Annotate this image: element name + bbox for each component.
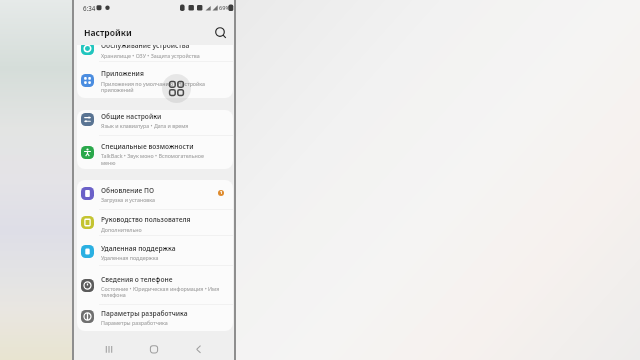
staticText: 6:34 <box>83 4 96 12</box>
button[interactable] <box>77 106 233 134</box>
button[interactable] <box>77 66 233 94</box>
staticText: 1 <box>220 190 223 196</box>
staticText: Удаленная поддержка <box>101 254 159 261</box>
staticText: Обновление ПО <box>101 186 155 195</box>
staticText: меню <box>101 159 116 166</box>
staticText: Руководство пользователя <box>101 215 191 224</box>
staticText: Состояние • Юридическая информация • Имя <box>101 285 220 292</box>
button[interactable] <box>77 179 233 207</box>
button[interactable] <box>77 302 233 330</box>
staticText: Настройки <box>84 27 132 39</box>
staticText: Параметры разработчика <box>101 319 168 326</box>
staticText: телефона <box>101 291 126 298</box>
staticText: Приложения <box>101 69 144 78</box>
staticText: Сведения о телефоне <box>101 275 173 284</box>
button[interactable]: Back <box>186 337 210 360</box>
staticText: приложений <box>101 86 134 93</box>
staticText: Дополнительно <box>101 226 142 233</box>
staticText: Обслуживание устройства <box>101 45 190 50</box>
button[interactable]: Home <box>142 337 166 360</box>
staticText: Общие настройки <box>101 112 162 121</box>
staticText: Язык и клавиатура • Дата и время <box>101 122 189 129</box>
staticText: 69% <box>219 4 231 12</box>
button[interactable] <box>77 209 233 237</box>
staticText: Приложения по умолчанию • Настройка <box>101 80 205 87</box>
staticText: Хранилище • ОЗУ • Защита устройства <box>101 52 200 59</box>
button[interactable] <box>77 271 233 299</box>
staticText: TalkBack • Звук моно • Вспомогательное <box>101 152 204 159</box>
button[interactable]: Recents <box>97 337 121 360</box>
staticText: Специальные возможности <box>101 142 194 151</box>
staticText: Загрузка и установка <box>101 196 155 203</box>
staticText: Параметры разработчика <box>101 309 188 318</box>
button[interactable] <box>77 237 233 265</box>
button[interactable] <box>77 45 233 63</box>
button[interactable] <box>77 139 233 167</box>
staticText: Удаленная поддержка <box>101 244 176 253</box>
button[interactable]: Search <box>212 24 230 42</box>
